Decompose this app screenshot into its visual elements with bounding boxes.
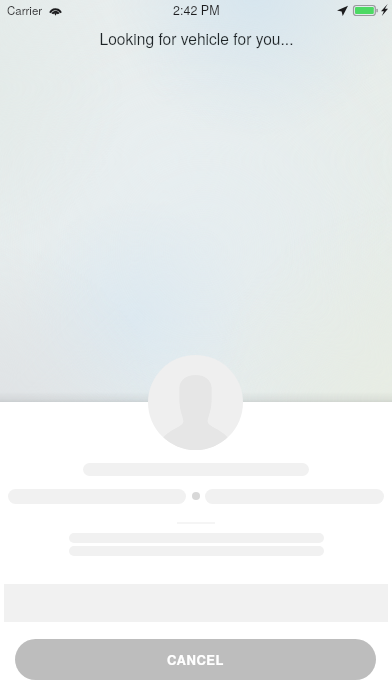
button[interactable]: CANCEL: [15, 639, 376, 680]
staticText: CANCEL: [167, 650, 224, 669]
staticText: Carrier: [7, 2, 43, 18]
staticText: Looking for vehicle for you...: [99, 27, 294, 49]
button[interactable]: Driver photo: [148, 355, 243, 450]
staticText: 2:42 PM: [173, 1, 220, 19]
